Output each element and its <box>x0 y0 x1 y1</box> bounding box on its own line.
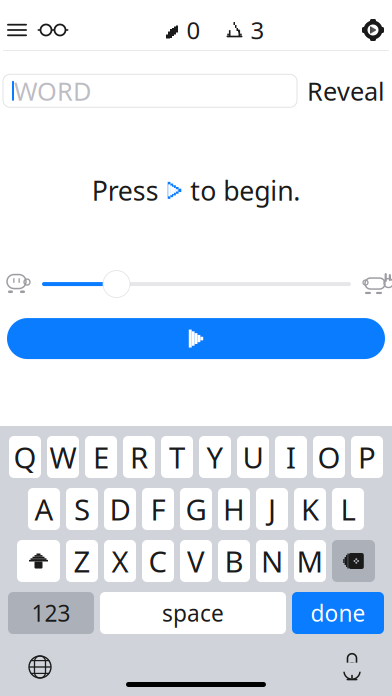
staticText: Reveal <box>307 74 385 108</box>
button[interactable]: U <box>237 436 269 478</box>
button[interactable]: B <box>218 540 250 582</box>
staticText: X <box>111 541 128 580</box>
button[interactable]: V <box>180 540 212 582</box>
staticText: 123 <box>31 598 70 628</box>
button[interactable]: space <box>100 592 286 634</box>
button[interactable]: A <box>28 488 60 530</box>
button[interactable]: H <box>218 488 250 530</box>
staticText: J <box>268 489 276 528</box>
staticText: S <box>74 489 90 528</box>
button[interactable]: R <box>123 436 155 478</box>
staticText: WORD <box>14 74 91 108</box>
staticText: E <box>93 437 109 476</box>
button[interactable]: Play <box>0 318 392 359</box>
staticText: R <box>130 437 148 476</box>
staticText: U <box>242 437 263 476</box>
staticText: T <box>169 437 185 476</box>
button[interactable]: done <box>292 592 384 634</box>
button[interactable]: X <box>104 540 136 582</box>
staticText: K <box>301 489 319 528</box>
staticText: Q <box>13 437 36 476</box>
button[interactable]: O <box>313 436 345 478</box>
button[interactable]: T <box>161 436 193 478</box>
button[interactable]: J <box>256 488 288 530</box>
staticText: Press <box>92 173 159 208</box>
button[interactable]: L <box>332 488 364 530</box>
button[interactable]: S <box>66 488 98 530</box>
button[interactable]: E <box>85 436 117 478</box>
staticText: V <box>187 541 205 580</box>
staticText: P <box>358 437 376 476</box>
button[interactable]: Dictation <box>330 650 374 684</box>
button[interactable]: Q <box>9 436 41 478</box>
staticText: N <box>261 541 283 580</box>
staticText: space <box>162 598 224 628</box>
staticText: M <box>296 541 323 580</box>
button[interactable]: Shift <box>17 540 60 582</box>
button[interactable]: N <box>256 540 288 582</box>
button[interactable]: Settings <box>355 14 391 46</box>
button[interactable]: M <box>294 540 326 582</box>
staticText: Z <box>73 541 90 580</box>
button[interactable]: Z <box>66 540 98 582</box>
staticText: to begin. <box>190 173 300 208</box>
button[interactable]: D <box>104 488 136 530</box>
staticText: 0 <box>186 14 200 46</box>
button[interactable]: I <box>275 436 307 478</box>
button[interactable]: C <box>142 540 174 582</box>
button[interactable]: P <box>351 436 383 478</box>
staticText: C <box>148 541 167 580</box>
staticText: A <box>34 489 53 528</box>
button[interactable]: Reveal letters <box>33 14 73 46</box>
staticText: H <box>223 489 245 528</box>
button[interactable]: Next keyboard <box>18 650 62 684</box>
staticText: O <box>317 437 340 476</box>
staticText: F <box>150 489 165 528</box>
button[interactable]: W <box>47 436 79 478</box>
staticText: I <box>286 437 296 476</box>
staticText: B <box>224 541 243 580</box>
button[interactable]: G <box>180 488 212 530</box>
staticText: W <box>49 437 76 476</box>
staticText: G <box>185 489 206 528</box>
button[interactable]: 123 <box>8 592 94 634</box>
button[interactable]: Y <box>199 436 231 478</box>
staticText: Y <box>206 437 223 476</box>
button[interactable]: K <box>294 488 326 530</box>
staticText: done <box>310 598 365 628</box>
staticText: 3 <box>250 14 264 46</box>
button[interactable]: Delete <box>332 540 375 582</box>
staticText: D <box>109 489 130 528</box>
button[interactable]: F <box>142 488 174 530</box>
staticText: L <box>340 489 355 528</box>
button[interactable]: Reveal <box>305 67 387 115</box>
button[interactable]: Menu <box>1 14 33 46</box>
